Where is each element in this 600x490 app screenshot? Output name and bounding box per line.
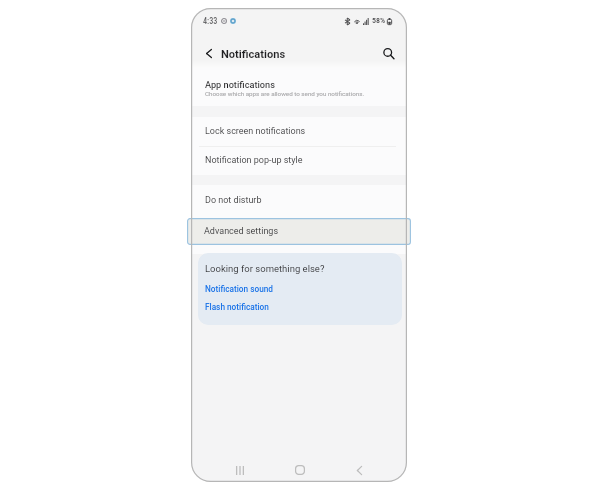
staticText: Looking for something else? bbox=[205, 263, 325, 274]
staticText: Notification pop-up style bbox=[205, 155, 303, 166]
button[interactable]: Recent apps bbox=[220, 450, 260, 482]
staticText: Choose which apps are allowed to send yo… bbox=[205, 90, 365, 97]
staticText: 58% bbox=[372, 16, 386, 25]
button[interactable]: Back bbox=[339, 450, 379, 482]
button[interactable]: Navigate up bbox=[196, 40, 222, 66]
button[interactable]: Do not disturb bbox=[191, 185, 407, 215]
staticText: Lock screen notifications bbox=[205, 126, 306, 137]
button[interactable]: App notifications bbox=[191, 68, 407, 106]
button[interactable]: Lock screen notifications bbox=[191, 117, 407, 146]
button[interactable]: Home bbox=[280, 450, 320, 482]
staticText: App notifications bbox=[205, 79, 275, 90]
button[interactable]: Notification sound bbox=[200, 282, 288, 296]
staticText: Do not disturb bbox=[205, 195, 262, 206]
button[interactable]: Flash notification bbox=[200, 300, 288, 314]
staticText: Notification sound bbox=[205, 284, 273, 294]
button[interactable]: Advanced settings bbox=[187, 218, 411, 245]
button[interactable]: Search bbox=[375, 40, 401, 66]
staticText: Flash notification bbox=[205, 302, 269, 312]
button[interactable]: Notification pop-up style bbox=[191, 146, 407, 175]
staticText: 4:33 bbox=[203, 16, 218, 26]
staticText: Advanced settings bbox=[204, 226, 279, 237]
staticText: Notifications bbox=[221, 48, 286, 61]
